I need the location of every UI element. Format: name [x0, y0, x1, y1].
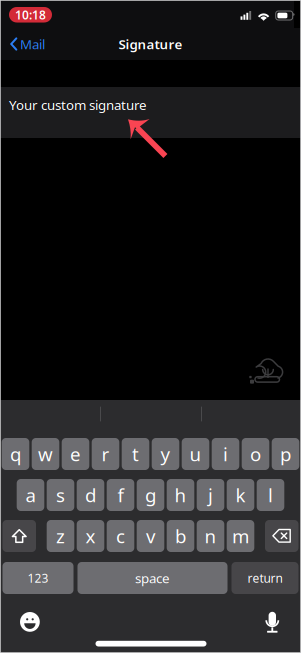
button[interactable]: s: [47, 479, 74, 511]
button[interactable]: d: [77, 479, 104, 511]
staticText: g: [145, 483, 156, 507]
button[interactable]: v: [137, 520, 164, 552]
button[interactable]: Emoji keyboard: [13, 605, 47, 639]
button[interactable]: m: [227, 520, 254, 552]
staticText: w: [38, 442, 53, 466]
staticText: q: [10, 442, 21, 466]
staticText: Signature: [118, 35, 182, 53]
button[interactable]: space: [77, 562, 227, 594]
staticText: h: [174, 483, 186, 507]
button[interactable]: Mail: [0, 28, 52, 60]
button[interactable]: w: [32, 438, 59, 470]
staticText: v: [146, 524, 155, 548]
button[interactable]: Dictation: [255, 602, 289, 636]
staticText: r: [101, 442, 109, 466]
button[interactable]: x: [77, 520, 104, 552]
staticText: i: [223, 442, 228, 466]
staticText: d: [85, 483, 96, 507]
staticText: Your custom signature: [9, 96, 147, 114]
button[interactable]: e: [62, 438, 89, 470]
staticText: y: [160, 442, 170, 466]
button[interactable]: o: [242, 438, 269, 470]
staticText: space: [135, 569, 170, 587]
staticText: z: [56, 524, 65, 548]
button[interactable]: l: [257, 479, 284, 511]
staticText: c: [116, 524, 125, 548]
button[interactable]: u: [182, 438, 209, 470]
button[interactable]: j: [197, 479, 224, 511]
staticText: e: [70, 442, 81, 466]
button[interactable]: k: [227, 479, 254, 511]
staticText: t: [132, 442, 139, 466]
staticText: return: [247, 570, 282, 586]
button[interactable]: Delete: [265, 520, 298, 552]
button[interactable]: y: [152, 438, 179, 470]
staticText: b: [175, 524, 186, 548]
button[interactable]: b: [167, 520, 194, 552]
staticText: Mail: [20, 35, 45, 53]
button[interactable]: 10:18: [9, 7, 52, 22]
staticText: 10:18: [15, 7, 46, 23]
staticText: j: [208, 483, 213, 507]
button[interactable]: 123: [2, 562, 73, 594]
button[interactable]: p: [272, 438, 299, 470]
button[interactable]: z: [47, 520, 74, 552]
button[interactable]: t: [122, 438, 149, 470]
staticText: m: [232, 524, 249, 548]
staticText: x: [85, 524, 95, 548]
staticText: a: [25, 483, 35, 507]
staticText: p: [280, 442, 291, 466]
button[interactable]: n: [197, 520, 224, 552]
staticText: n: [204, 524, 216, 548]
staticText: u: [189, 442, 201, 466]
button[interactable]: Shift: [2, 520, 36, 552]
staticText: s: [56, 483, 65, 507]
staticText: 123: [27, 570, 48, 586]
staticText: l: [268, 483, 273, 507]
button[interactable]: f: [107, 479, 134, 511]
button[interactable]: q: [2, 438, 29, 470]
staticText: f: [117, 483, 123, 507]
button[interactable]: c: [107, 520, 134, 552]
button[interactable]: a: [17, 479, 44, 511]
button[interactable]: g: [137, 479, 164, 511]
button[interactable]: h: [167, 479, 194, 511]
staticText: o: [250, 442, 261, 466]
button[interactable]: r: [92, 438, 119, 470]
button[interactable]: return: [231, 562, 298, 594]
button[interactable]: i: [212, 438, 239, 470]
staticText: k: [235, 483, 245, 507]
